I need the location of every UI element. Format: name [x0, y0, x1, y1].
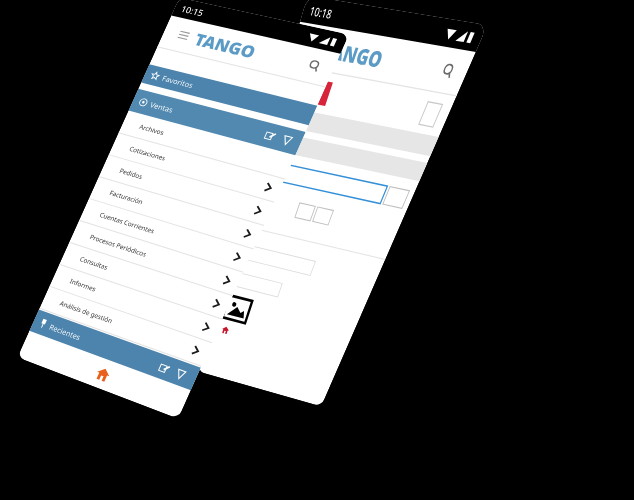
- staticText: Análisis de gestión: [58, 299, 114, 325]
- staticText: Favoritos: [160, 73, 195, 90]
- staticText: TANGO: [191, 28, 260, 63]
- button[interactable]: Cuentas Corrientes: [79, 199, 253, 272]
- staticText: TANGO: [320, 35, 388, 74]
- staticText: 10:15: [179, 2, 207, 18]
- button[interactable]: Cancelar: [288, 76, 333, 106]
- button[interactable]: Edit: [261, 128, 279, 143]
- button[interactable]: Edit: [156, 360, 173, 376]
- button[interactable]: Pedidos: [99, 155, 274, 225]
- button[interactable]: Options: [419, 102, 442, 127]
- staticText: Informes: [68, 276, 98, 293]
- button[interactable]: Menu options: [295, 203, 315, 221]
- staticText: Cotizaciones: [128, 144, 168, 163]
- button[interactable]: Bookmark: [172, 366, 189, 382]
- button[interactable]: Facturación: [89, 177, 264, 248]
- button[interactable]: Home: [89, 361, 116, 387]
- staticText: Consultas: [78, 254, 109, 272]
- button[interactable]: Menu: [174, 27, 193, 43]
- button[interactable]: Bookmark: [279, 133, 296, 147]
- staticText: Ventas: [149, 100, 175, 115]
- staticText: Cuentas Corrientes: [98, 210, 156, 236]
- staticText: Pedidos: [118, 166, 145, 181]
- staticText: Archivos: [138, 122, 166, 137]
- button[interactable]: Análisis de gestión: [40, 287, 212, 366]
- button[interactable]: Menu: [304, 37, 322, 56]
- button[interactable]: Cotizaciones: [109, 133, 285, 202]
- button[interactable]: Informes: [50, 265, 222, 342]
- button[interactable]: Add: [383, 187, 409, 208]
- staticText: Recientes: [48, 322, 82, 342]
- button[interactable]: Search: [436, 59, 461, 82]
- button[interactable]: Text field: [260, 160, 387, 203]
- staticText: Procesos Periódicos: [88, 232, 148, 259]
- button[interactable]: Consultas: [59, 243, 233, 319]
- button[interactable]: Favoritos: [141, 64, 317, 125]
- staticText: Cancelar: [297, 84, 324, 99]
- button[interactable]: Procesos Periódicos: [69, 221, 243, 295]
- button[interactable]: Dropdown: [313, 207, 333, 225]
- button[interactable]: Archivos: [119, 111, 295, 178]
- button[interactable]: Ventas: [128, 89, 306, 155]
- button[interactable]: Recientes: [29, 310, 201, 390]
- staticText: 10:18: [308, 2, 335, 21]
- staticText: Facturación: [108, 188, 145, 206]
- button[interactable]: Search: [303, 56, 326, 75]
